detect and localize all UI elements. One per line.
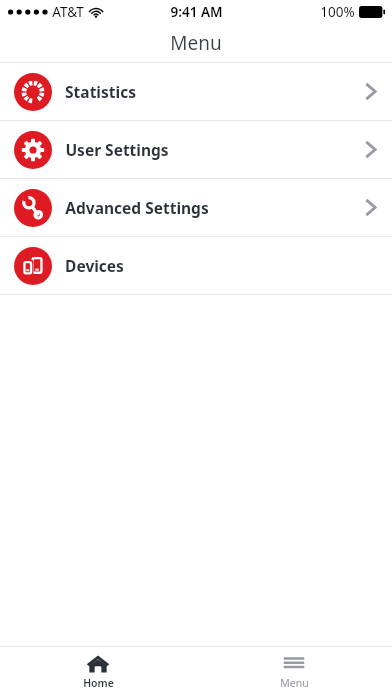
staticText: AT&T (52, 3, 84, 21)
button[interactable]: Statistics (0, 63, 392, 120)
staticText: 100% (320, 3, 355, 21)
staticText: Devices (65, 255, 124, 276)
staticText: 9:41 AM (170, 3, 223, 21)
staticText: Home (83, 676, 114, 690)
staticText: Statistics (65, 81, 136, 102)
staticText: Menu (170, 30, 222, 56)
button[interactable]: Menu (196, 647, 392, 696)
other: Open Statistics (365, 82, 376, 101)
other: Open User Settings (365, 140, 376, 159)
staticText: Menu (280, 676, 309, 690)
button[interactable]: Devices (0, 237, 392, 294)
button[interactable]: User Settings (0, 121, 392, 178)
other: Open Advanced Settings (365, 198, 376, 217)
button[interactable]: Advanced Settings (0, 179, 392, 236)
button[interactable]: Home (0, 647, 196, 696)
staticText: User Settings (65, 139, 169, 160)
staticText: Advanced Settings (65, 197, 209, 218)
